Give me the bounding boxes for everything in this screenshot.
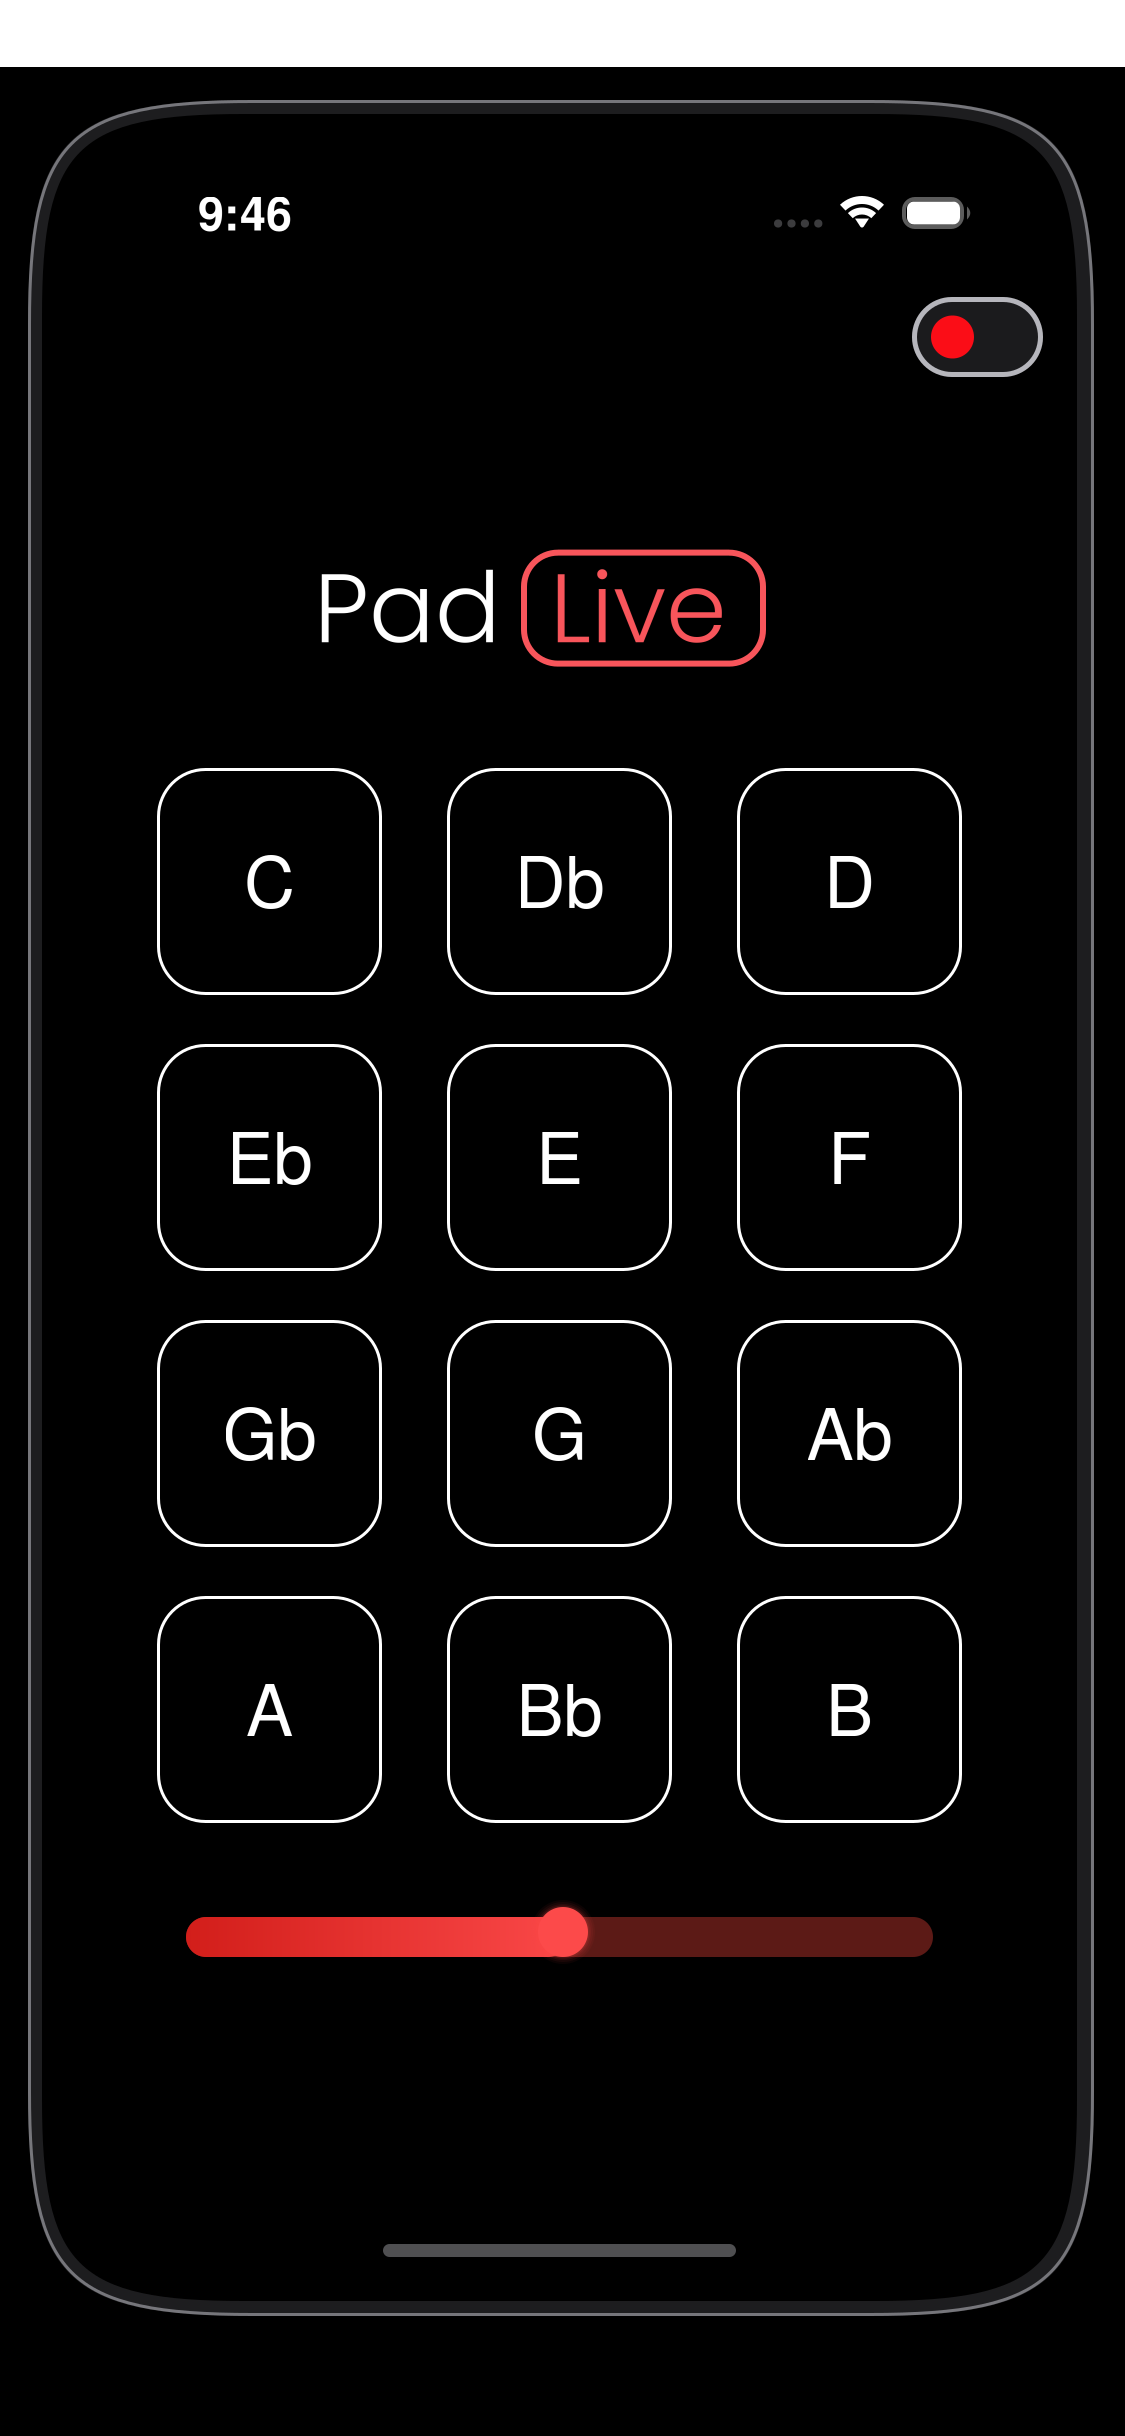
staticText: Eb <box>226 1103 312 1204</box>
staticText: Db <box>514 827 604 928</box>
button[interactable]: Gb <box>157 1320 382 1547</box>
staticText: F <box>828 1103 871 1204</box>
staticText: D <box>824 827 875 928</box>
staticText: Live <box>550 540 727 676</box>
button[interactable]: Eb <box>157 1044 382 1271</box>
staticText: G <box>532 1379 587 1480</box>
button[interactable]: A <box>157 1596 382 1823</box>
button[interactable]: Bb <box>447 1596 672 1823</box>
staticText: Ab <box>806 1379 892 1480</box>
button[interactable]: C <box>157 768 382 995</box>
staticText: A <box>246 1655 293 1756</box>
button[interactable]: Volume <box>186 1907 933 1957</box>
staticText: C <box>244 827 295 928</box>
staticText: Pad <box>314 540 501 676</box>
button[interactable]: G <box>447 1320 672 1547</box>
button[interactable]: Record <box>912 297 1043 377</box>
button[interactable]: E <box>447 1044 672 1271</box>
button[interactable]: Ab <box>737 1320 962 1547</box>
staticText: B <box>826 1655 873 1756</box>
staticText: Bb <box>516 1655 602 1756</box>
staticText: E <box>536 1103 583 1204</box>
staticText: 9:46 <box>198 178 292 245</box>
button[interactable]: D <box>737 768 962 995</box>
staticText: Gb <box>222 1379 316 1480</box>
button[interactable]: B <box>737 1596 962 1823</box>
button[interactable]: Db <box>447 768 672 995</box>
button[interactable]: F <box>737 1044 962 1271</box>
